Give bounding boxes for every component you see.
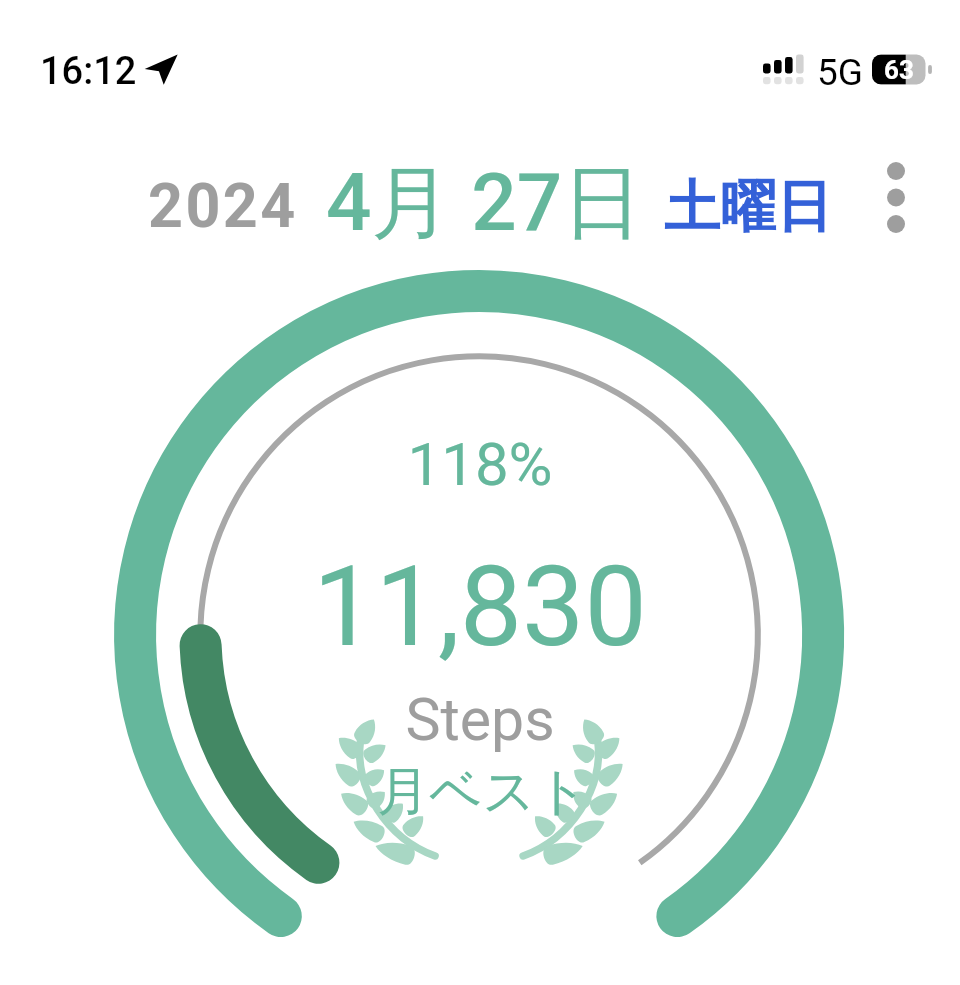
staticText: 118% bbox=[407, 429, 553, 499]
staticText: 63 bbox=[884, 55, 914, 85]
staticText: Steps bbox=[405, 685, 555, 754]
other: Location bbox=[144, 54, 178, 85]
staticText: 16:12 bbox=[40, 49, 137, 94]
staticText: 11,830 bbox=[313, 542, 647, 672]
staticText: 月ベスト bbox=[377, 759, 589, 825]
staticText: 2024 bbox=[148, 170, 298, 241]
staticText: 5G bbox=[817, 51, 863, 94]
staticText: 4月 27日 bbox=[326, 153, 643, 254]
button[interactable]: More options bbox=[866, 146, 926, 250]
staticText: 土曜日 bbox=[664, 172, 832, 243]
